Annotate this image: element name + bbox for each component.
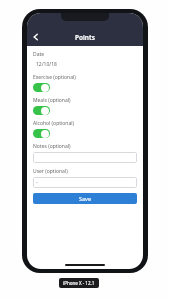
button[interactable]: - xyxy=(33,177,137,188)
staticText: Notes (optional) xyxy=(33,143,71,150)
staticText: Alcohol (optional) xyxy=(33,120,75,127)
button[interactable]: Exercise xyxy=(33,83,50,92)
button[interactable]: Meals xyxy=(33,106,50,115)
button[interactable] xyxy=(33,152,137,163)
button[interactable]: Alcohol xyxy=(33,129,50,138)
staticText: Exercise (optional) xyxy=(33,74,76,81)
staticText: Points xyxy=(75,33,95,42)
staticText: Meals (optional) xyxy=(33,97,71,104)
staticText: - xyxy=(36,179,38,186)
staticText: User (optional) xyxy=(33,168,68,175)
staticText: iPhone X - 12.1 xyxy=(63,280,95,286)
button[interactable]: Back xyxy=(28,29,44,45)
staticText: Date xyxy=(33,51,45,58)
staticText: Save xyxy=(79,195,92,202)
button[interactable]: Save xyxy=(33,193,137,204)
staticText: 12/10/18 xyxy=(36,61,57,68)
